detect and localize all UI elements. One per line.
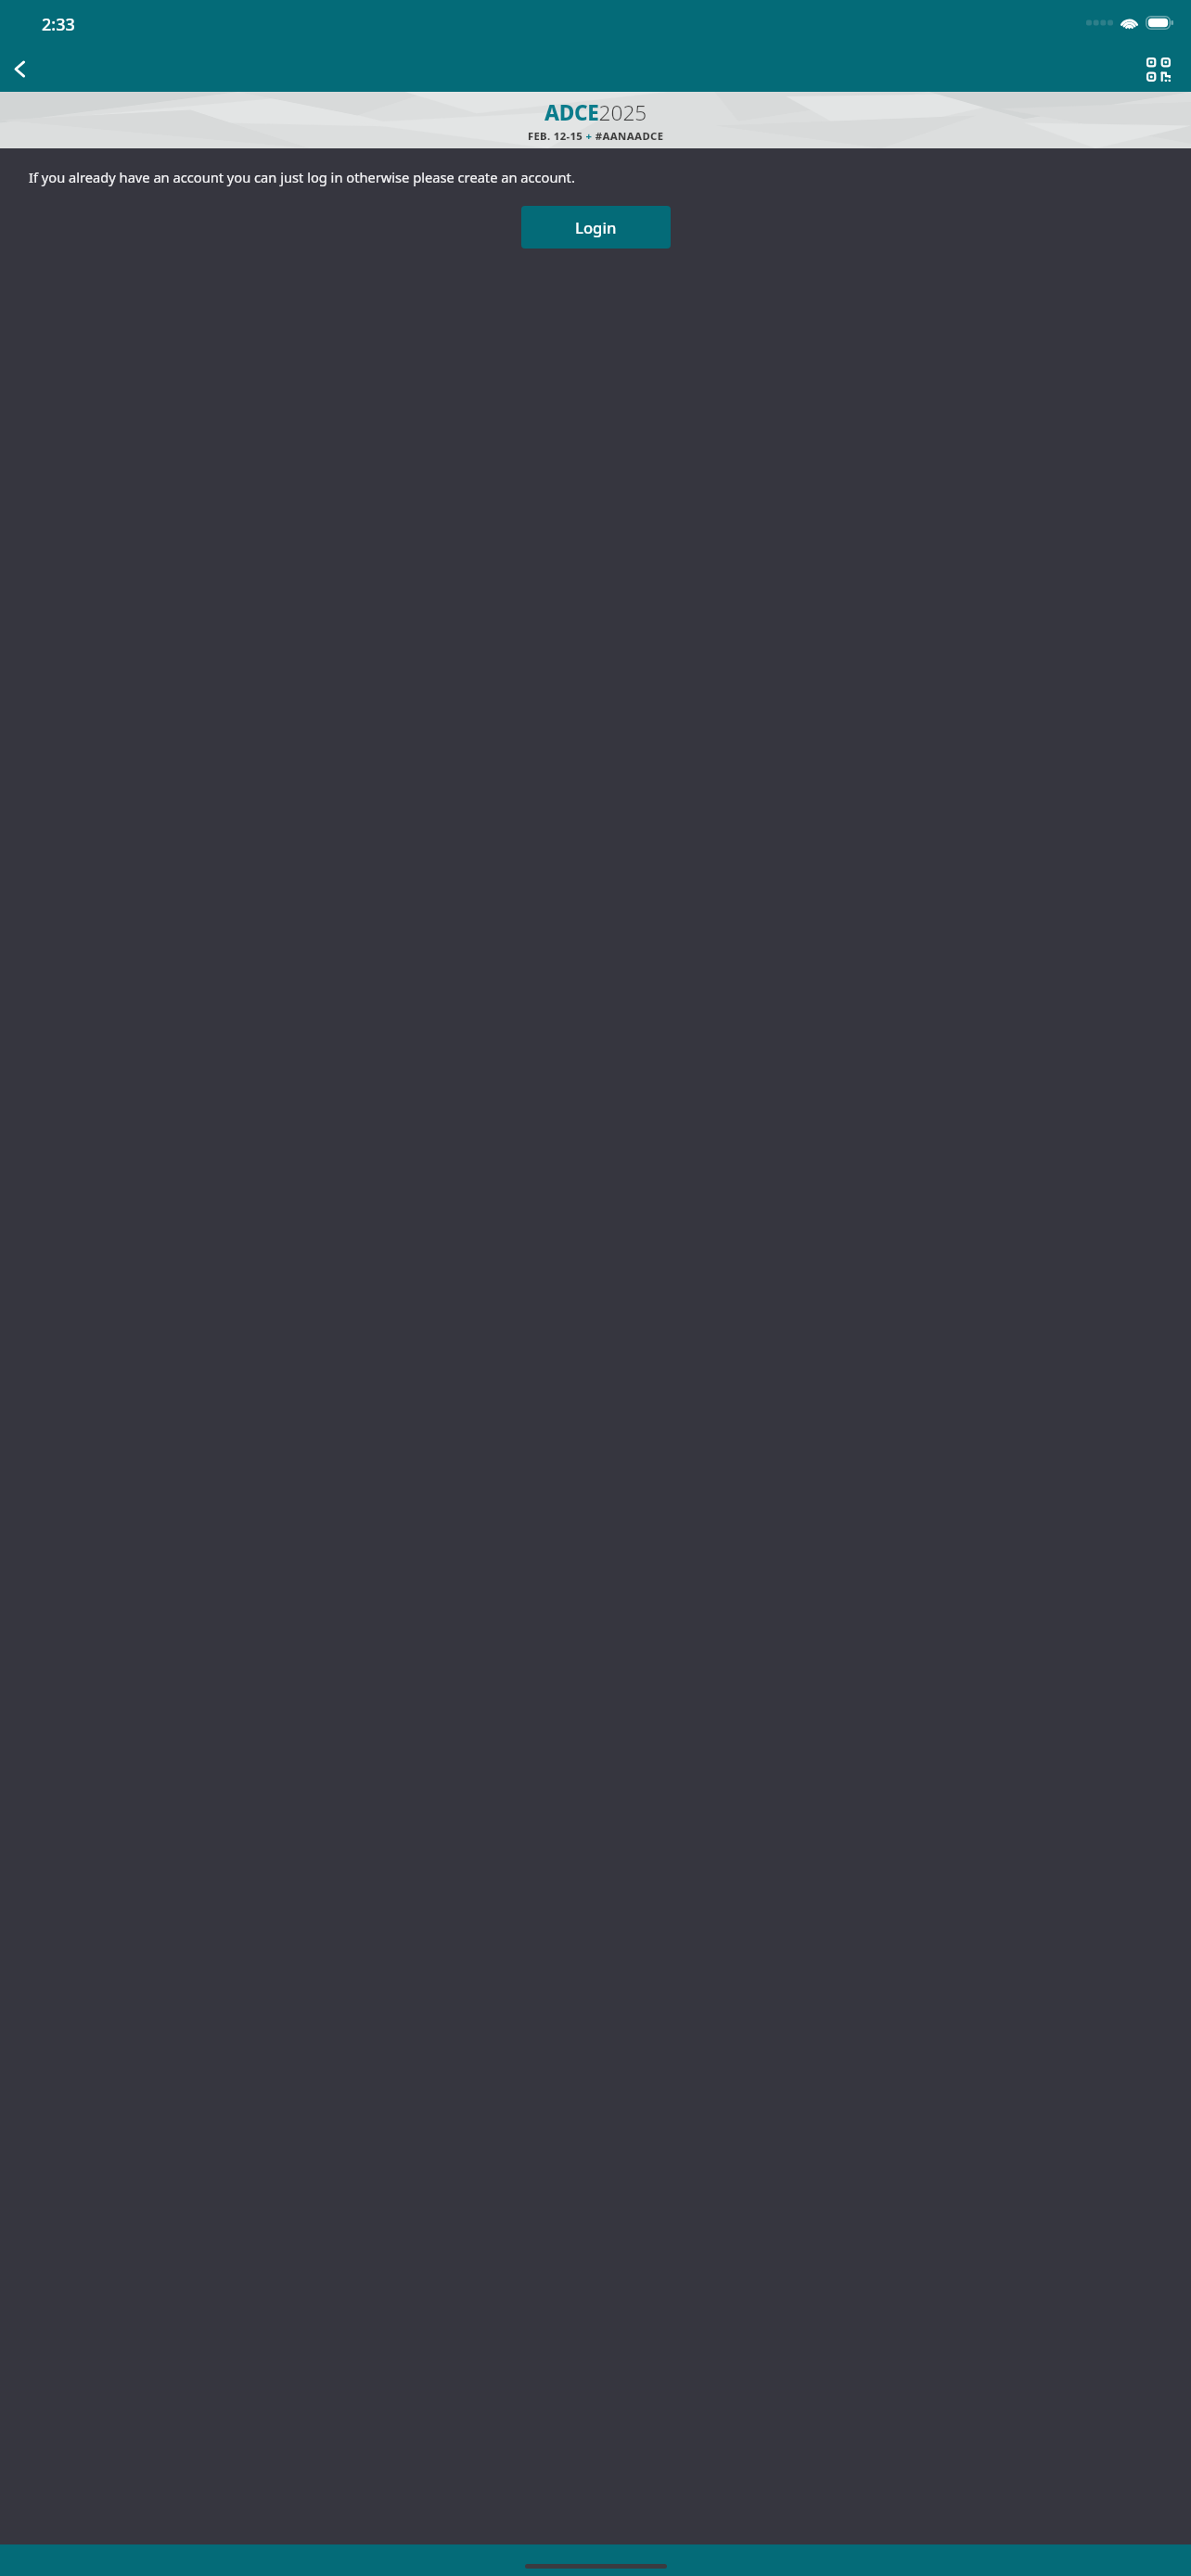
staticText: If you already have an account you can j… [29, 168, 1162, 186]
button[interactable]: Login [521, 206, 671, 249]
staticText: 2:33 [42, 13, 75, 36]
staticText: ADCE2025 [544, 98, 647, 127]
button[interactable]: Scan QR code [1141, 52, 1175, 86]
button[interactable]: Back [3, 52, 37, 86]
staticText: Login [575, 217, 617, 238]
staticText: FEB. 12-15 + #AANAADCE [528, 129, 664, 143]
